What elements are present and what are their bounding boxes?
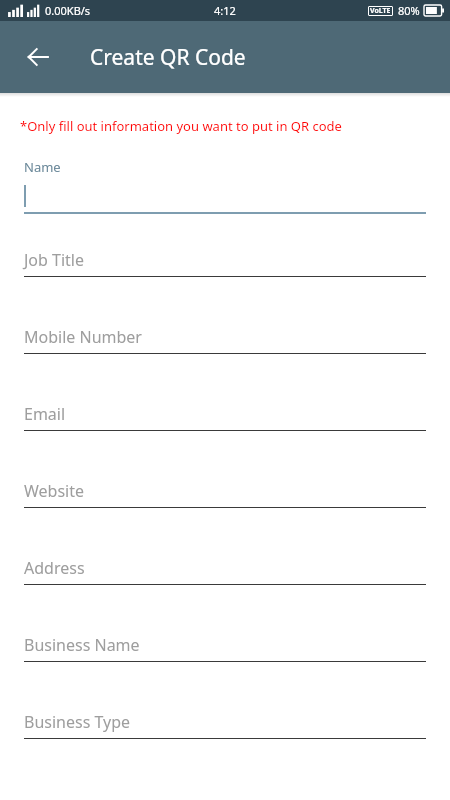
staticText: VoLTE	[370, 6, 391, 16]
staticText: Create QR Code	[90, 43, 246, 72]
button[interactable]: Mobile Number	[0, 312, 450, 389]
staticText: Email	[24, 403, 66, 425]
staticText: 80%	[398, 3, 420, 18]
button[interactable]: Business Name	[0, 620, 450, 697]
staticText: Website	[24, 480, 85, 502]
button[interactable]: Business Type	[0, 697, 450, 774]
staticText: Business Name	[24, 634, 140, 656]
button[interactable]: Email	[0, 389, 450, 466]
staticText: Address	[24, 557, 85, 579]
staticText: 0.00KB/s	[45, 3, 91, 18]
button[interactable]: Name	[0, 158, 450, 235]
button[interactable]: Back	[14, 33, 62, 81]
button[interactable]: Website	[0, 466, 450, 543]
staticText: 4:12	[214, 3, 236, 18]
staticText: Job Title	[24, 249, 85, 271]
button[interactable]: Address	[0, 543, 450, 620]
button[interactable]: Job Title	[0, 235, 450, 312]
staticText: Business Type	[24, 711, 131, 733]
staticText: Mobile Number	[24, 326, 142, 348]
staticText: Name	[24, 158, 61, 176]
staticText: *Only fill out information you want to p…	[20, 117, 342, 135]
